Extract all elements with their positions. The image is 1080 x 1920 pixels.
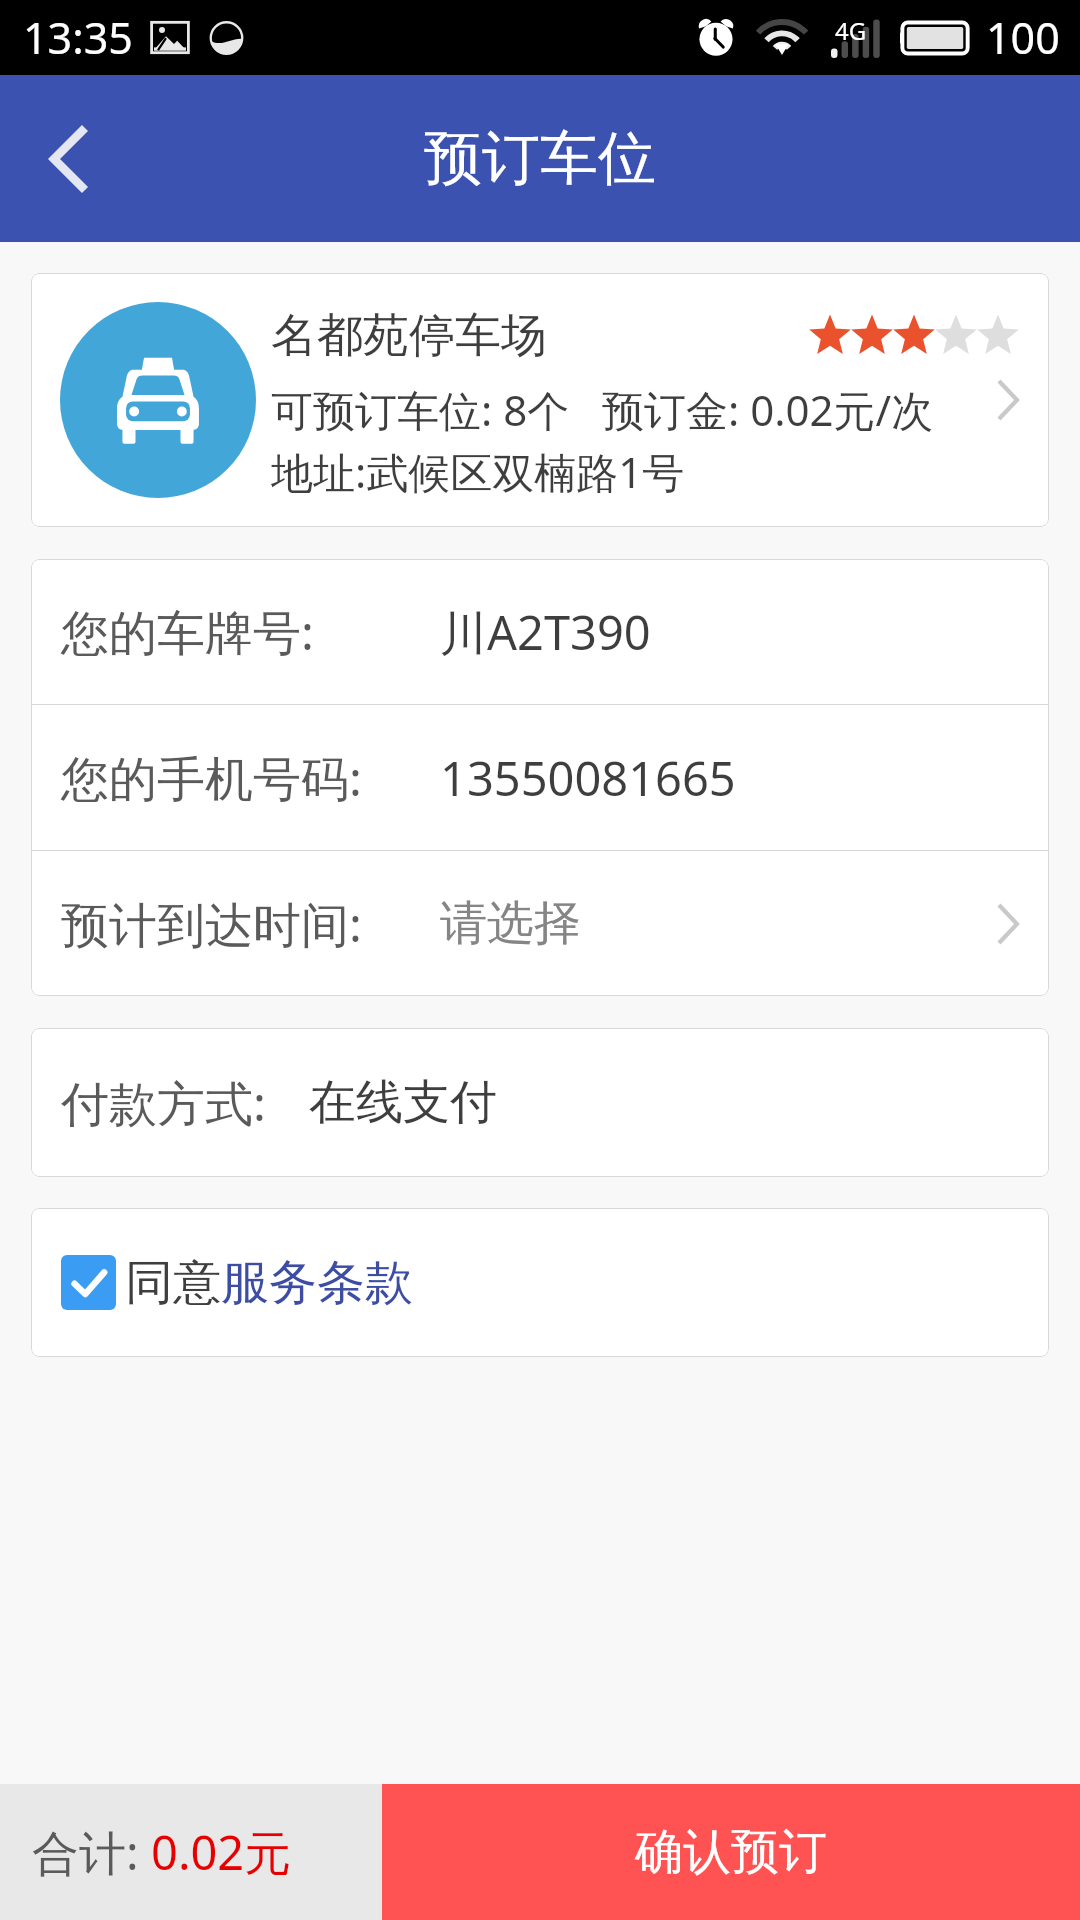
button[interactable]: 您的车牌号:: [31, 559, 1049, 704]
staticText: 确认预订: [635, 1822, 827, 1882]
staticText: 100: [986, 8, 1060, 67]
staticText: 13:35: [23, 8, 133, 67]
staticText: 在线支付: [309, 1073, 497, 1132]
staticText: 川A2T390: [440, 600, 651, 664]
button[interactable]: 确认预订: [382, 1784, 1080, 1920]
staticText: 0.02元: [151, 1820, 292, 1884]
staticText: 可预订车位: 8个 预订金: 0.02元/次: [271, 381, 934, 438]
button[interactable]: 预计到达时间:: [31, 851, 1049, 996]
staticText: 合计:: [32, 1820, 151, 1884]
staticText: 您的车牌号:: [61, 599, 314, 665]
staticText: 预订车位: [424, 122, 656, 195]
staticText: 服务条款: [221, 1253, 413, 1313]
staticText: 请选择: [440, 894, 581, 953]
staticText: 您的手机号码:: [61, 745, 362, 811]
button[interactable]: Back: [8, 99, 128, 219]
staticText: 预计到达时间:: [61, 891, 362, 957]
staticText: 付款方式:: [61, 1070, 266, 1136]
button[interactable]: 同意: [31, 1208, 1049, 1357]
button[interactable]: 您的手机号码:: [31, 705, 1049, 850]
staticText: 名都苑停车场: [271, 307, 547, 365]
staticText: 13550081665: [440, 746, 736, 810]
staticText: 地址:武候区双楠路1号: [271, 443, 685, 500]
staticText: 4G: [835, 14, 867, 47]
button[interactable]: 合计:: [0, 1784, 382, 1920]
button[interactable]: 付款方式:: [31, 1028, 1049, 1177]
staticText: 同意: [125, 1253, 221, 1313]
button[interactable]: 名都苑停车场: [31, 273, 1049, 527]
